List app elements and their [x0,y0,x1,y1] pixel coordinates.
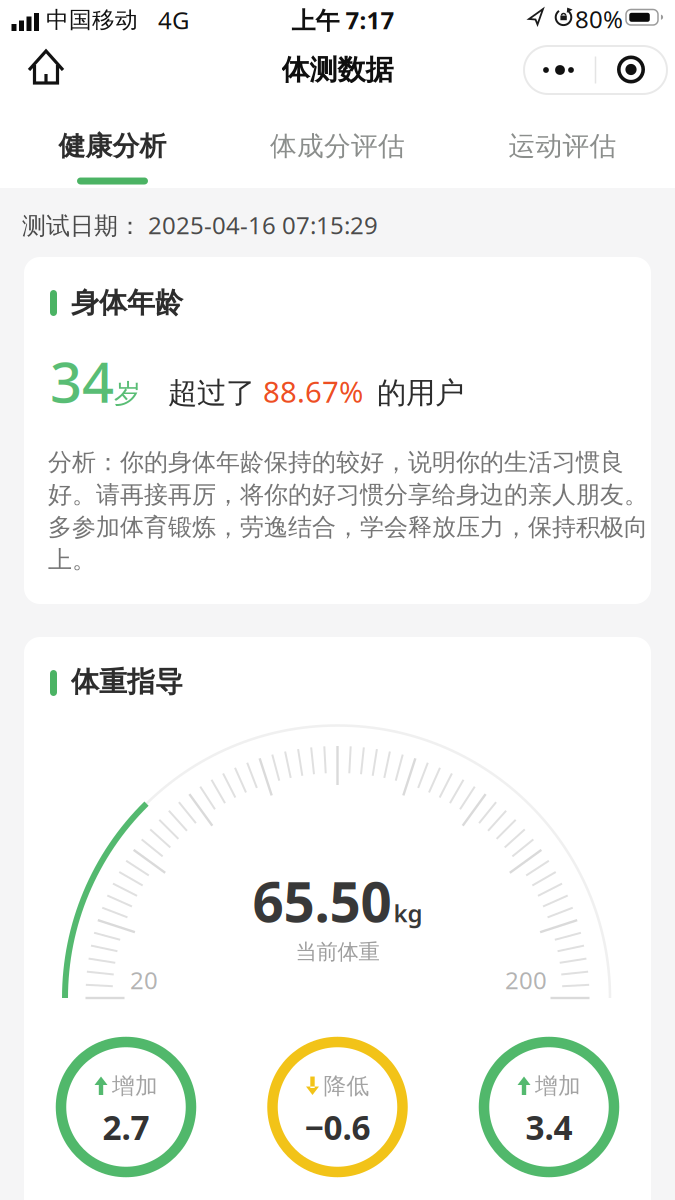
staticText: 运动评估 [508,130,616,162]
button[interactable]: 运动评估 [450,116,675,176]
staticText: 超过了 [168,375,255,411]
staticText: 身体年龄 [71,286,183,320]
button[interactable]: More [524,46,595,94]
staticText: −0.6 [304,1105,370,1149]
staticText: 降低 [323,1072,369,1100]
staticText: 200 [505,964,547,996]
button[interactable]: Home [22,43,70,91]
staticText: 80% [575,3,623,35]
staticText: 34 [50,344,114,418]
staticText: 上午 7:17 [291,4,394,36]
staticText: 健康分析 [58,130,166,162]
button[interactable]: Exit [595,46,666,94]
staticText: 88.67% [263,372,363,411]
staticText: 当前体重 [295,939,379,965]
button[interactable]: 健康分析 [0,116,225,176]
staticText: 体测数据 [281,53,393,87]
staticText: 20 [130,964,158,996]
staticText: 2.7 [102,1105,149,1149]
button[interactable]: 体成分评估 [225,116,450,176]
staticText: 增加 [112,1072,158,1100]
staticText: 体重指导 [71,665,183,699]
staticText: 岁 [114,377,141,410]
staticText: kg [393,897,422,929]
staticText: 的用户 [377,375,464,411]
staticText: 4G [158,4,189,36]
staticText: 增加 [535,1072,581,1100]
staticText: 分析：你的身体年龄保持的较好，说明你的生活习惯良 好。请再接再厉，将你的好习惯分… [48,447,648,574]
staticText: 3.4 [525,1105,572,1149]
staticText: 体成分评估 [270,130,405,162]
staticText: 65.50 [252,865,391,937]
staticText: 测试日期： 2025-04-16 07:15:29 [22,209,378,241]
staticText: 中国移动 [46,6,138,34]
